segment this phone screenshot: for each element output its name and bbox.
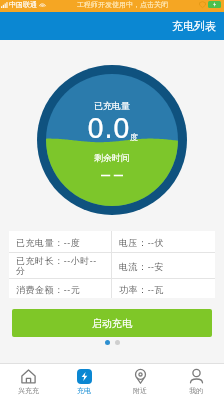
staticText: 中国联通 [9,0,37,9]
staticText: 工程师开发使用中，点击关闭 [77,0,168,9]
staticText: 电流：--安 [119,260,165,272]
staticText: 功率：--瓦 [119,283,165,295]
button[interactable]: 兴充充 [0,364,56,400]
staticText: 度 [130,132,138,142]
staticText: 充电 [77,386,91,395]
staticText: 附近 [133,386,147,395]
button[interactable]: 我的 [168,364,224,400]
staticText: 0.0 [87,113,130,144]
staticText: 已充电量 [94,100,130,111]
button[interactable]: 启动充电 [12,309,212,337]
staticText: 剩余时间 [94,152,130,163]
button[interactable]: 附近 [112,364,168,400]
staticText: 已充时长：--小时-- 分 [16,254,97,277]
staticText: 我的 [189,386,203,395]
button[interactable]: 充电列表 [172,19,216,33]
staticText: 电压：--伏 [119,236,165,248]
staticText: 启动充电 [92,317,132,330]
staticText: 兴充充 [18,386,39,395]
staticText: 充电列表 [172,19,216,33]
staticText: 已充电量：--度 [16,236,81,248]
button[interactable]: 充电 [56,364,112,400]
staticText: 消费金额：--元 [16,283,81,295]
